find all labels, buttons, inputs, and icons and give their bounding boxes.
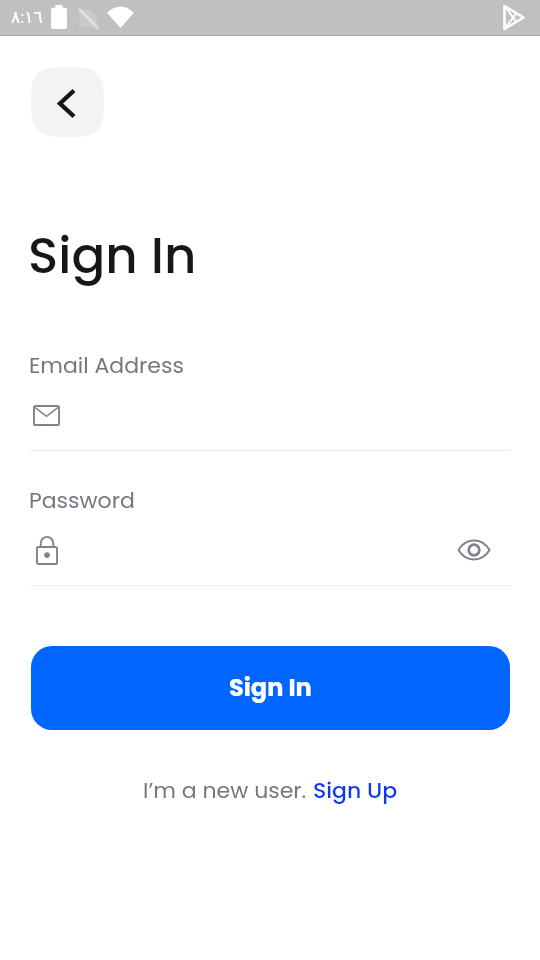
staticText: Sign In — [28, 221, 197, 291]
staticText: Sign In — [229, 671, 312, 705]
staticText: I’m a new user. — [143, 775, 313, 806]
staticText: ٨:١٦ — [11, 7, 43, 27]
button[interactable]: Back — [31, 67, 104, 137]
button[interactable]: Sign In — [31, 646, 510, 730]
staticText: Sign Up — [313, 775, 398, 806]
staticText: Email Address — [29, 350, 184, 381]
button[interactable]: Sign Up — [313, 775, 398, 806]
staticText: Password — [29, 485, 135, 516]
button[interactable]: Show password — [452, 528, 496, 572]
